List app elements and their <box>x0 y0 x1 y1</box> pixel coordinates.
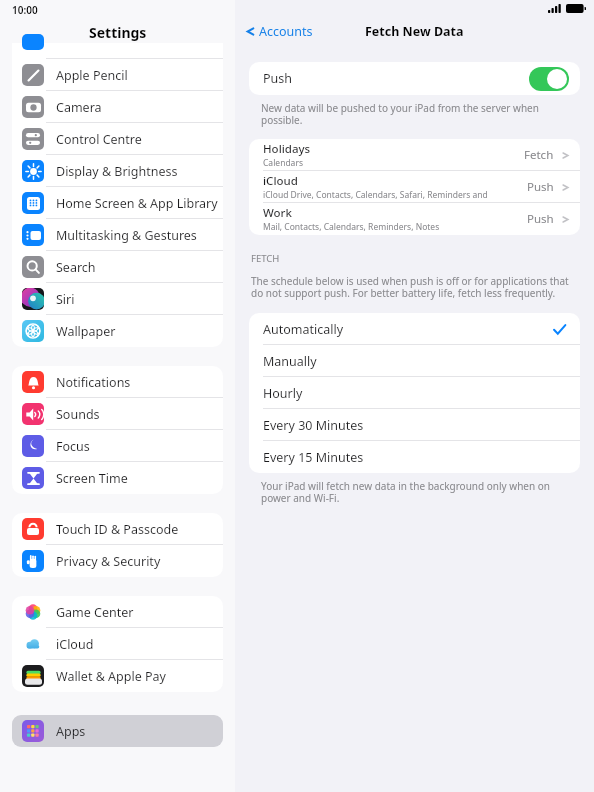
staticText: iCloud Drive, Contacts, Calendars, Safar… <box>263 189 494 201</box>
staticText: Display & Brightness <box>56 163 178 180</box>
button[interactable]: Screen Time <box>12 462 223 494</box>
staticText: Wallet & Apple Pay <box>56 668 166 685</box>
staticText: Sounds <box>56 406 100 423</box>
button[interactable]: Display & Brightness <box>12 155 223 187</box>
button[interactable]: Siri <box>12 283 223 315</box>
staticText: Calendars <box>263 157 303 169</box>
staticText: Hourly <box>263 385 303 402</box>
button[interactable]: Manually <box>249 345 580 377</box>
button[interactable]: Automatically <box>249 313 580 345</box>
staticText: Every 30 Minutes <box>263 417 364 434</box>
staticText: Home Screen & App Library <box>56 195 218 212</box>
button[interactable]: Privacy & Security <box>12 545 223 577</box>
button[interactable]: Notifications <box>12 366 223 398</box>
staticText: Settings <box>89 23 147 42</box>
button[interactable]: Control Centre <box>12 123 223 155</box>
staticText: Manually <box>263 353 317 370</box>
button[interactable]: Work <box>249 203 580 235</box>
staticText: Control Centre <box>56 131 142 148</box>
button[interactable]: Apple Pencil <box>12 59 223 91</box>
button[interactable]: Search <box>12 251 223 283</box>
button[interactable]: Wallet & Apple Pay <box>12 660 223 692</box>
button[interactable]: Apps <box>12 715 223 747</box>
button[interactable]: Touch ID & Passcode <box>12 513 223 545</box>
button[interactable]: iCloud <box>12 628 223 660</box>
button[interactable]: Accounts <box>235 23 319 40</box>
staticText: Privacy & Security <box>56 553 161 570</box>
staticText: Holidays <box>263 141 311 157</box>
staticText: Search <box>56 259 96 276</box>
button[interactable]: Home Screen & App Library <box>12 187 223 219</box>
staticText: Push <box>527 211 554 227</box>
staticText: Every 15 Minutes <box>263 449 364 466</box>
staticText: Work <box>263 205 292 221</box>
staticText: iCloud <box>263 173 298 189</box>
staticText: iCloud <box>56 636 94 653</box>
button[interactable]: Camera <box>12 91 223 123</box>
staticText: Touch ID & Passcode <box>56 521 179 538</box>
staticText: Notifications <box>56 374 131 391</box>
staticText: Wallpaper <box>56 323 116 340</box>
staticText: FETCH <box>251 252 280 265</box>
button[interactable]: Wallpaper <box>12 315 223 347</box>
staticText: Apps <box>56 723 86 740</box>
staticText: Push <box>527 179 554 195</box>
button[interactable]: Multitasking & Gestures <box>12 219 223 251</box>
staticText: Camera <box>56 99 102 116</box>
staticText: Siri <box>56 291 75 308</box>
staticText: Focus <box>56 438 90 455</box>
button[interactable]: Push toggle <box>529 67 569 91</box>
staticText: Multitasking & Gestures <box>56 227 197 244</box>
staticText: New data will be pushed to your iPad fro… <box>261 101 568 127</box>
button[interactable]: iCloud <box>249 171 580 203</box>
button[interactable]: Hourly <box>249 377 580 409</box>
staticText: Automatically <box>263 321 344 338</box>
staticText: 10:00 <box>12 3 38 17</box>
button[interactable]: Focus <box>12 430 223 462</box>
button[interactable]: Game Center <box>12 596 223 628</box>
staticText: Screen Time <box>56 470 128 487</box>
staticText: The schedule below is used when push is … <box>251 274 578 300</box>
staticText: Mail, Contacts, Calendars, Reminders, No… <box>263 221 440 233</box>
staticText: Your iPad will fetch new data in the bac… <box>261 479 568 505</box>
button[interactable]: Every 30 Minutes <box>249 409 580 441</box>
button[interactable]: Sounds <box>12 398 223 430</box>
staticText: Fetch <box>524 147 554 163</box>
staticText: Push <box>263 70 293 87</box>
staticText: Fetch New Data <box>365 23 464 40</box>
staticText: Apple Pencil <box>56 67 128 84</box>
staticText: Accounts <box>259 23 313 40</box>
button[interactable]: Every 15 Minutes <box>249 441 580 473</box>
button[interactable]: Holidays <box>249 139 580 171</box>
staticText: Game Center <box>56 604 134 621</box>
